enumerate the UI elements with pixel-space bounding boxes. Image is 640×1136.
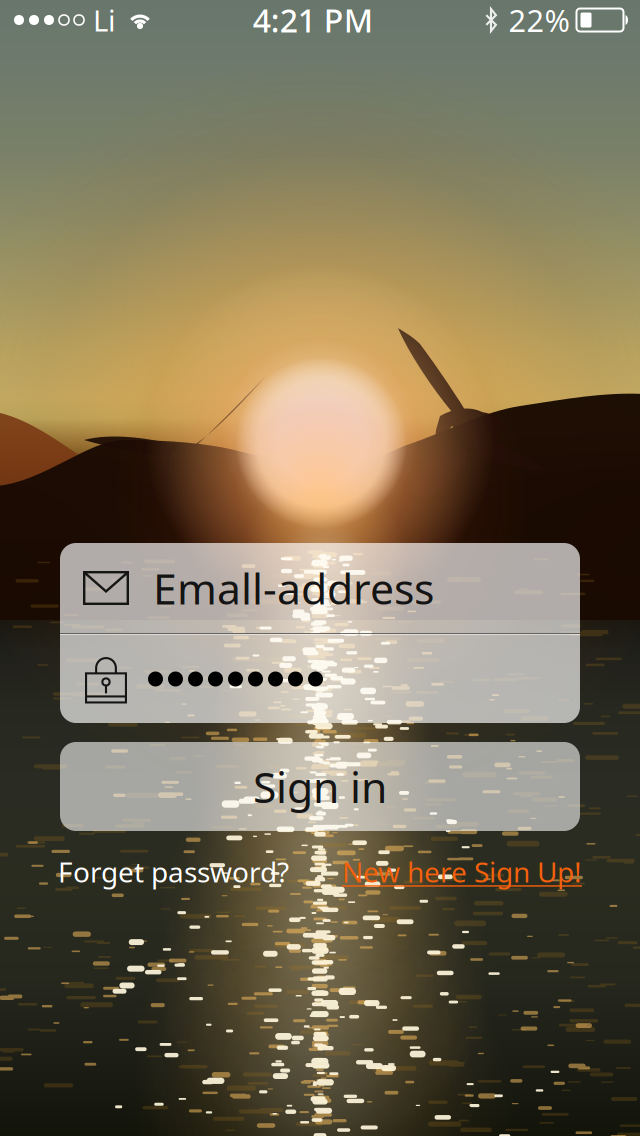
button[interactable]: Forget password? bbox=[58, 853, 289, 890]
button[interactable]: New here Sign Up! bbox=[342, 853, 582, 890]
staticText: New here Sign Up! bbox=[342, 853, 582, 890]
staticText: 22% bbox=[508, 0, 569, 40]
button[interactable]: Emall-address bbox=[60, 543, 580, 633]
staticText: 4:21 PM bbox=[253, 0, 373, 41]
button[interactable]: Sign in bbox=[60, 742, 580, 831]
staticText: Forget password? bbox=[58, 853, 289, 890]
button[interactable] bbox=[60, 635, 580, 723]
staticText: Li bbox=[93, 0, 116, 39]
staticText: Sign in bbox=[253, 758, 387, 815]
staticText: Emall-address bbox=[153, 560, 434, 616]
